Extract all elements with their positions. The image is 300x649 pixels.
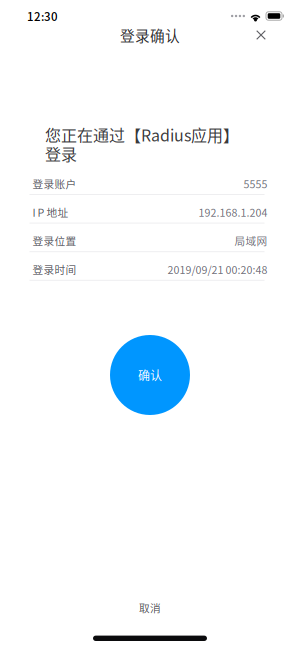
staticText: 12:30 bbox=[27, 8, 58, 24]
staticText: 5555 bbox=[243, 176, 267, 191]
staticText: 登录账户 bbox=[32, 176, 76, 191]
staticText: 登录时间 bbox=[32, 262, 76, 277]
staticText: 局域网 bbox=[234, 233, 267, 248]
staticText: 登录 bbox=[45, 142, 77, 165]
button[interactable]: 确认 bbox=[110, 335, 190, 415]
button[interactable]: Close bbox=[244, 21, 278, 49]
staticText: 取消 bbox=[139, 600, 161, 615]
staticText: 登录位置 bbox=[32, 233, 76, 248]
staticText: I P 地址 bbox=[32, 204, 68, 220]
staticText: 登录确认 bbox=[120, 24, 180, 46]
button[interactable]: 取消 bbox=[115, 595, 185, 621]
staticText: 您正在通过【Radius应用】 bbox=[45, 123, 239, 146]
staticText: 2019/09/21 00:20:48 bbox=[167, 262, 267, 277]
staticText: 确认 bbox=[138, 366, 162, 384]
staticText: 192.168.1.204 bbox=[198, 204, 267, 220]
